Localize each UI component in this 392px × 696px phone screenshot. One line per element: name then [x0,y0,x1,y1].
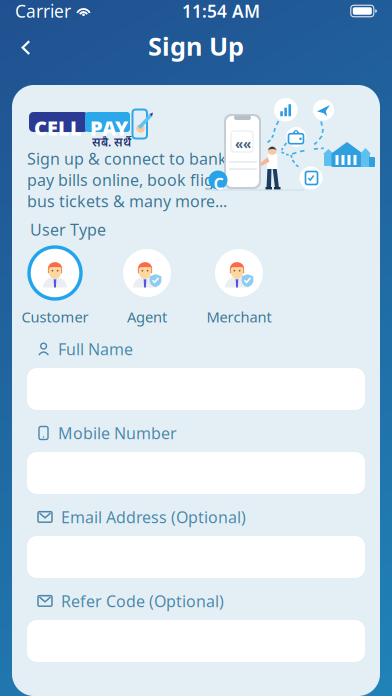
staticText: CELL [34,114,82,141]
staticText: Mobile Number [58,422,177,444]
button[interactable]: Back [11,31,41,64]
staticText: «« [235,135,251,153]
staticText: Email Address (Optional) [61,506,246,528]
staticText: Customer [21,307,88,326]
staticText: Sign Up [148,29,244,63]
staticText: Refer Code (Optional) [61,590,224,612]
staticText: 11:54 AM [182,0,260,22]
staticText: PAY [90,114,128,141]
staticText: C [213,173,223,194]
staticText: Full Name [58,338,133,360]
button[interactable]: Agent [101,246,192,324]
staticText: Sign up & connect to banks, pay bills on… [27,148,242,212]
staticText: Merchant [206,307,271,326]
staticText: Carrier [15,0,71,22]
button[interactable]: Customer [9,246,100,324]
button[interactable]: Merchant [193,246,284,324]
staticText: सबै. सर्थै [92,134,131,150]
staticText: User Type [30,219,106,240]
staticText: Agent [127,307,167,326]
